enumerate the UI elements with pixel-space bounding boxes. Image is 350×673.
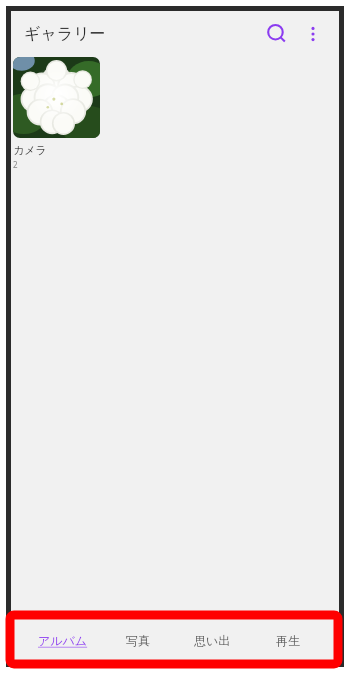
staticText: 写真	[126, 633, 150, 648]
button[interactable]: カメラ	[13, 57, 113, 170]
button[interactable]: 思い出	[175, 618, 250, 662]
button[interactable]: 再生	[250, 618, 325, 662]
staticText: 2	[13, 159, 18, 170]
button[interactable]: Search	[259, 16, 295, 52]
button[interactable]: 写真	[100, 618, 175, 662]
staticText: 思い出	[194, 633, 231, 648]
staticText: アルバム	[38, 633, 88, 648]
staticText: ギャラリー	[24, 24, 106, 44]
button[interactable]: アルバム	[25, 618, 100, 662]
staticText: カメラ	[13, 143, 47, 157]
staticText: 再生	[276, 633, 300, 648]
button[interactable]: More options	[295, 16, 331, 52]
